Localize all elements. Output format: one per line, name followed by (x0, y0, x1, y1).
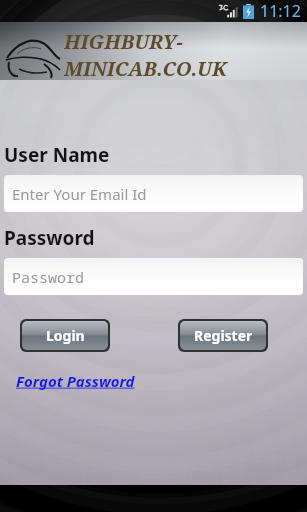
staticText: Enter Your Email Id (12, 184, 147, 204)
staticText: Register (194, 326, 253, 345)
button[interactable]: Forgot Password (14, 369, 137, 393)
button[interactable]: Register (180, 321, 266, 350)
staticText: Forgot Password (16, 371, 135, 391)
staticText: HIGHBURY-MINICAB.CO.UK (64, 28, 307, 80)
button[interactable]: Login (22, 321, 108, 350)
staticText: User Name (4, 142, 110, 168)
staticText: Login (46, 326, 85, 345)
staticText: Password (12, 267, 85, 287)
staticText: Password (4, 225, 95, 251)
button[interactable]: Password (4, 258, 303, 295)
staticText: 11:12 (260, 0, 301, 22)
button[interactable]: Enter Your Email Id (4, 175, 303, 212)
